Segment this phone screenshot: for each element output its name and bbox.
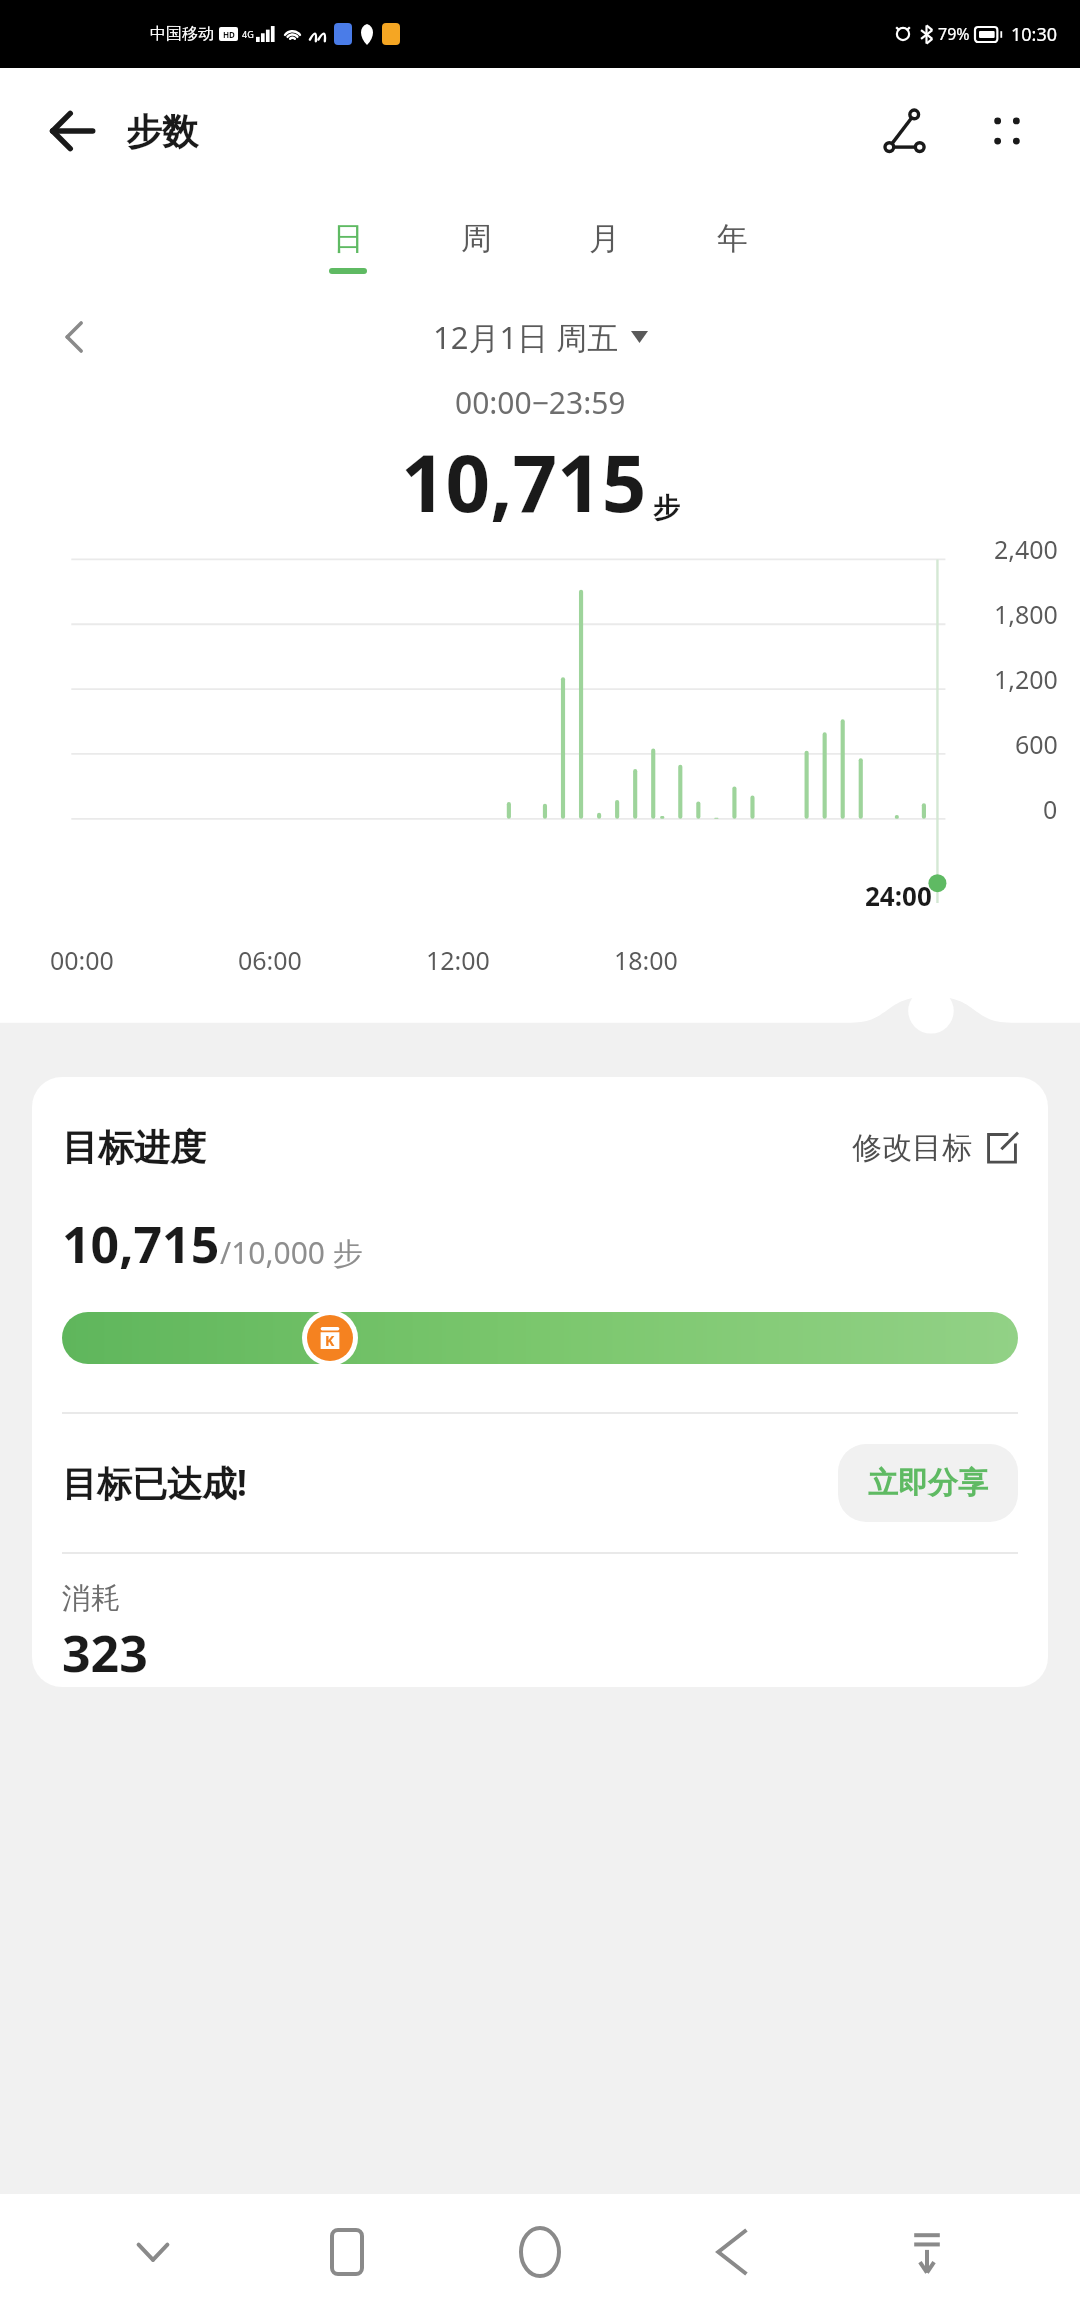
staticText: 10,715 (401, 429, 647, 535)
staticText: 600 (1015, 727, 1058, 761)
button[interactable]: Previous day (44, 306, 106, 368)
button[interactable]: Recents (307, 2212, 387, 2292)
button[interactable]: Hide (113, 2212, 193, 2292)
staticText: 00:00 (50, 943, 114, 977)
staticText: 06:00 (238, 943, 302, 977)
staticText: 4G (242, 28, 254, 40)
staticText: 0 (1043, 792, 1058, 826)
button[interactable]: 月 (564, 219, 644, 274)
button[interactable]: More options (972, 96, 1042, 166)
staticText: 1,200 (994, 662, 1058, 696)
staticText: 修改目标 (852, 1129, 972, 1167)
staticText: 12:00 (426, 943, 490, 977)
staticText: 周 (461, 219, 492, 258)
button[interactable]: 修改目标 (852, 1129, 1018, 1167)
staticText: 目标已达成! (62, 1459, 247, 1507)
staticText: 323 (62, 1619, 148, 1687)
staticText: K (325, 1331, 335, 1350)
staticText: 79% (938, 23, 970, 45)
staticText: 年 (717, 219, 748, 258)
staticText: 18:00 (614, 943, 678, 977)
staticText: HD (223, 29, 235, 40)
staticText: 10,715 (62, 1210, 220, 1278)
staticText: 立即分享 (868, 1464, 988, 1502)
staticText: 24:00 (865, 878, 932, 913)
staticText: 00:00−23:59 (455, 382, 626, 423)
button[interactable]: Notifications (887, 2212, 967, 2292)
button[interactable]: 周 (436, 219, 516, 274)
staticText: /10,000 步 (220, 1232, 363, 1273)
staticText: 消耗 (62, 1580, 120, 1617)
staticText: 中国移动 (150, 24, 214, 44)
button[interactable]: Back (693, 2212, 773, 2292)
staticText: 12月1日 周五 (433, 316, 619, 358)
staticText: 2,400 (994, 532, 1058, 566)
staticText: 1,800 (994, 597, 1058, 631)
staticText: 10:30 (1011, 22, 1058, 47)
button[interactable]: 日 (308, 219, 388, 274)
button[interactable]: Share (870, 96, 940, 166)
button[interactable]: Home (500, 2212, 580, 2292)
staticText: 目标进度 (62, 1125, 206, 1170)
button[interactable]: 年 (692, 219, 772, 274)
staticText: 月 (589, 219, 620, 258)
staticText: 日 (333, 219, 364, 258)
button[interactable]: 立即分享 (838, 1444, 1018, 1522)
staticText: 步 (653, 491, 680, 525)
button[interactable]: Back (38, 97, 106, 165)
staticText: 步数 (126, 109, 198, 154)
button[interactable]: 12月1日 周五 (433, 316, 648, 358)
